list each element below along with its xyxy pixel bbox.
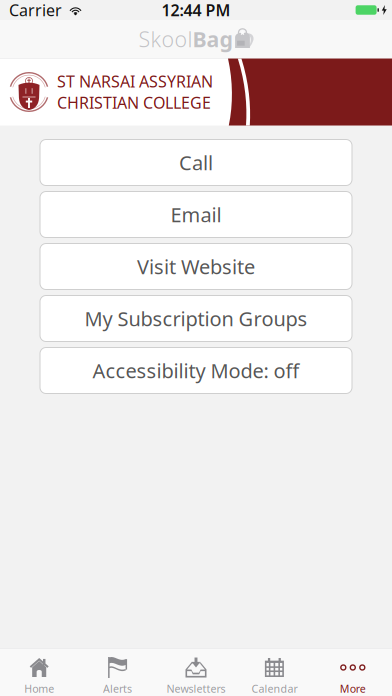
staticText: Carrier: [9, 0, 62, 21]
staticText: Accessibility Mode: off: [92, 357, 299, 384]
staticText: 12:44 PM: [161, 0, 230, 21]
staticText: Alerts: [103, 681, 132, 696]
staticText: Email: [170, 201, 221, 228]
staticText: More: [340, 681, 366, 696]
staticText: Newsletters: [166, 681, 225, 696]
staticText: Home: [24, 681, 54, 696]
staticText: ST NARSAI ASSYRIAN: [57, 71, 213, 92]
staticText: My Subscription Groups: [84, 305, 307, 332]
button[interactable]: Home: [0, 648, 78, 696]
staticText: Call: [179, 149, 213, 176]
button[interactable]: Accessibility Mode: off: [40, 347, 352, 393]
button[interactable]: More: [314, 648, 392, 696]
staticText: Skool: [138, 25, 192, 53]
button[interactable]: Visit Website: [40, 243, 352, 289]
button[interactable]: Email: [40, 191, 352, 237]
button[interactable]: My Subscription Groups: [40, 295, 352, 341]
staticText: CHRISTIAN COLLEGE: [57, 92, 211, 113]
staticText: Bag: [192, 25, 232, 53]
button[interactable]: Alerts: [78, 648, 157, 696]
staticText: Visit Website: [137, 253, 255, 280]
button[interactable]: Call: [40, 139, 352, 185]
button[interactable]: Newsletters: [157, 648, 235, 696]
staticText: Calendar: [251, 681, 297, 696]
button[interactable]: Calendar: [235, 648, 314, 696]
